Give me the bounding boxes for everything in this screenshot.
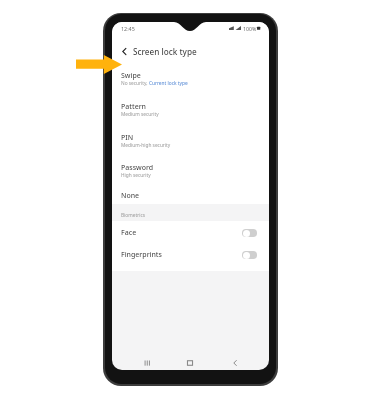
- button[interactable]: Back: [228, 356, 242, 370]
- button[interactable]: None: [112, 184, 269, 206]
- button[interactable]: Face: [112, 222, 269, 242]
- button[interactable]: Recent apps: [140, 356, 154, 370]
- staticText: Screen lock type: [133, 46, 197, 57]
- staticText: Face: [121, 228, 137, 238]
- button[interactable]: Pattern: [112, 95, 269, 122]
- staticText: Password: [121, 163, 154, 173]
- staticText: Medium-high security: [121, 142, 171, 149]
- staticText: 100%: [243, 25, 257, 32]
- staticText: Medium security: [121, 111, 159, 118]
- staticText: PIN: [121, 133, 134, 143]
- button[interactable]: PIN: [112, 126, 269, 153]
- staticText: Biometrics: [121, 212, 145, 219]
- button[interactable]: Fingerprints: [112, 244, 269, 264]
- staticText: High security: [121, 172, 151, 179]
- staticText: None: [121, 191, 140, 201]
- staticText: Swipe: [121, 71, 141, 81]
- staticText: Current lock type: [149, 80, 188, 87]
- staticText: 12:45: [121, 25, 135, 32]
- button[interactable]: Swipe: [112, 64, 269, 91]
- staticText: Pattern: [121, 102, 147, 112]
- button[interactable]: Password: [112, 156, 269, 183]
- staticText: Fingerprints: [121, 250, 162, 260]
- button[interactable]: Home: [183, 356, 197, 370]
- button[interactable]: Navigate up: [118, 45, 131, 58]
- staticText: No security,: [121, 80, 149, 87]
